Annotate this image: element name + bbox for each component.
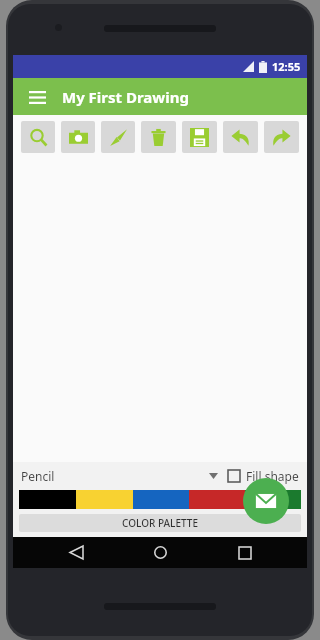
button[interactable]: Home [138,537,182,568]
button[interactable]: Recent apps [223,537,267,568]
button[interactable]: Search [21,121,55,153]
staticText: My First Drawing [62,87,189,107]
button[interactable]: Send email [243,478,289,524]
staticText: 12:55 [272,59,301,74]
button[interactable]: Red [189,490,245,509]
button[interactable]: Brush [101,121,135,153]
staticText: Fill shape [246,468,299,484]
button[interactable]: Redo [264,121,299,153]
staticText: Pencil [21,468,55,484]
button[interactable]: Camera [61,121,95,153]
button[interactable]: Green [245,490,301,509]
staticText: COLOR PALETTE [122,516,198,530]
button[interactable]: Back [54,537,98,568]
button[interactable]: Save [182,121,217,153]
button[interactable]: Delete [141,121,176,153]
button[interactable]: Undo [223,121,258,153]
button[interactable]: Fill shape [228,462,299,490]
button[interactable]: COLOR PALETTE [19,514,301,532]
button[interactable]: Pencil [21,462,228,490]
button[interactable]: Open navigation menu [21,81,53,113]
